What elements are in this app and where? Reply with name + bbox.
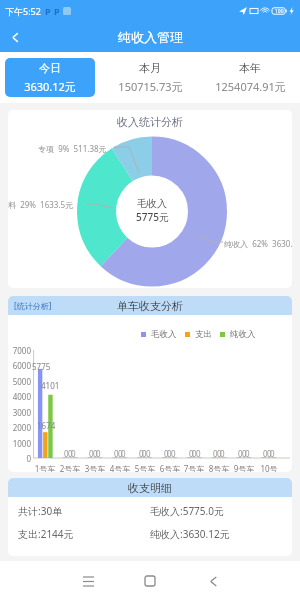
staticText: 支出 bbox=[195, 329, 212, 340]
staticText: 150715.73元 bbox=[118, 79, 183, 94]
staticText: 1674 bbox=[37, 420, 56, 431]
staticText: 收支明细 bbox=[128, 481, 172, 495]
staticText: 0 bbox=[167, 448, 172, 459]
staticText: 0 bbox=[242, 448, 247, 459]
staticText: 0 bbox=[171, 448, 176, 459]
button[interactable]: 收支明细 bbox=[8, 478, 292, 497]
staticText: 0 bbox=[71, 448, 76, 459]
staticText: 0 bbox=[114, 448, 119, 459]
staticText: 0 bbox=[93, 448, 98, 459]
staticText: 纯收入:3630.12元 bbox=[150, 527, 292, 541]
staticText: 0 bbox=[146, 448, 151, 459]
staticText: 0 bbox=[213, 448, 218, 459]
staticText: 毛收入:5775.0元 bbox=[150, 504, 292, 518]
staticText: 0 bbox=[139, 448, 144, 459]
staticText: 0 bbox=[238, 448, 243, 459]
staticText: 共计:30单 bbox=[18, 504, 150, 518]
button[interactable]: Back bbox=[195, 563, 231, 599]
staticText: 毛收入 bbox=[137, 197, 167, 210]
staticText: 2000 bbox=[8, 422, 31, 433]
staticText: 3630.12元 bbox=[24, 79, 76, 94]
staticText: 单车收支分析 bbox=[117, 299, 183, 313]
staticText: 3号车 bbox=[83, 463, 107, 472]
button[interactable]: Home bbox=[132, 563, 168, 599]
staticText: 6000 bbox=[8, 360, 31, 371]
button[interactable]: [统计分析] bbox=[8, 296, 292, 315]
staticText: 燃料 29% 1633.5元 bbox=[8, 199, 74, 210]
staticText: 0 bbox=[196, 448, 201, 459]
staticText: 0 bbox=[245, 448, 250, 459]
staticText: 纯收入 bbox=[230, 329, 256, 340]
button[interactable]: Back bbox=[0, 22, 30, 52]
staticText: 0 bbox=[96, 448, 101, 459]
staticText: 1254074.91元 bbox=[215, 79, 286, 94]
staticText: 2号车 bbox=[58, 463, 82, 472]
staticText: 9号车 bbox=[232, 463, 256, 472]
staticText: 收入统计分析 bbox=[117, 115, 183, 129]
staticText: 支出:2144元 bbox=[18, 527, 150, 541]
staticText: 10号车 bbox=[257, 463, 281, 472]
staticText: 0 bbox=[217, 448, 222, 459]
staticText: 5775元 bbox=[136, 210, 169, 224]
staticText: [统计分析] bbox=[14, 300, 52, 311]
staticText: 8号车 bbox=[207, 463, 231, 472]
staticText: 0 bbox=[220, 448, 225, 459]
staticText: P bbox=[54, 5, 60, 17]
staticText: 0 bbox=[142, 448, 147, 459]
staticText: 0 bbox=[192, 448, 197, 459]
staticText: 5号车 bbox=[133, 463, 157, 472]
staticText: 0 bbox=[68, 448, 73, 459]
staticText: 0 bbox=[118, 448, 123, 459]
staticText: 4000 bbox=[8, 391, 31, 402]
staticText: 0 bbox=[89, 448, 94, 459]
staticText: 0 bbox=[189, 448, 194, 459]
staticText: 0 bbox=[270, 448, 275, 459]
staticText: 7号车 bbox=[182, 463, 206, 472]
button[interactable]: 本年 bbox=[205, 58, 295, 97]
staticText: 100 bbox=[275, 8, 284, 15]
staticText: 今日 bbox=[39, 61, 61, 75]
button[interactable]: Recent apps bbox=[70, 563, 106, 599]
staticText: 4101 bbox=[41, 380, 60, 391]
staticText: 下午5:52 bbox=[5, 5, 41, 17]
button[interactable]: 今日 bbox=[5, 58, 95, 97]
staticText: 1号车 bbox=[33, 463, 57, 472]
staticText: 0 bbox=[263, 448, 268, 459]
staticText: 6号车 bbox=[158, 463, 182, 472]
staticText: 本年 bbox=[239, 61, 261, 75]
staticText: 纯收入 62% 3630.12元 bbox=[224, 238, 292, 249]
staticText: 专项 9% 511.38元 bbox=[38, 143, 107, 154]
staticText: 毛收入 bbox=[151, 329, 177, 340]
staticText: 1000 bbox=[8, 438, 31, 449]
staticText: 本月 bbox=[139, 61, 161, 75]
staticText: 0 bbox=[164, 448, 169, 459]
staticText: P bbox=[45, 5, 51, 17]
staticText: 0 bbox=[8, 453, 31, 464]
staticText: 0 bbox=[121, 448, 126, 459]
staticText: 4号车 bbox=[108, 463, 132, 472]
staticText: 5000 bbox=[8, 376, 31, 387]
staticText: 7000 bbox=[8, 345, 31, 356]
staticText: 5775 bbox=[32, 361, 51, 372]
staticText: 3000 bbox=[8, 407, 31, 418]
staticText: 纯收入管理 bbox=[118, 29, 183, 45]
staticText: 0 bbox=[64, 448, 69, 459]
staticText: 0 bbox=[267, 448, 272, 459]
button[interactable]: 本月 bbox=[105, 58, 195, 97]
